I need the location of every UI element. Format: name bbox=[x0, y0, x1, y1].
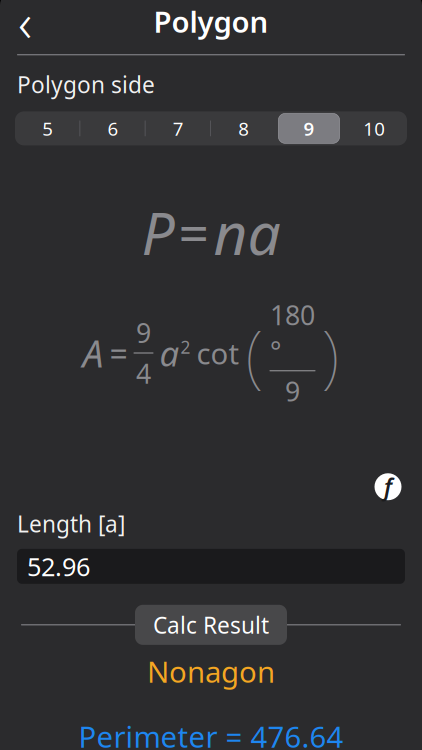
staticText: Polygon side bbox=[17, 69, 155, 99]
button[interactable]: 9 bbox=[276, 111, 342, 145]
button[interactable]: 10 bbox=[342, 111, 407, 145]
button[interactable]: Formula options bbox=[368, 467, 408, 507]
staticText: Length [a] bbox=[17, 509, 125, 539]
staticText: 7 bbox=[173, 116, 184, 141]
staticText: 9 bbox=[136, 315, 151, 350]
staticText: f bbox=[384, 472, 392, 502]
staticText: 9 bbox=[303, 116, 314, 141]
staticText: 5 bbox=[42, 116, 53, 141]
staticText: 6 bbox=[107, 116, 118, 141]
staticText: ‹ bbox=[18, 0, 32, 57]
button[interactable]: 52.96 bbox=[17, 549, 405, 584]
staticText: 52.96 bbox=[27, 549, 90, 583]
staticText: Nonagon bbox=[147, 652, 275, 691]
staticText: ( bbox=[245, 307, 263, 399]
staticText: P bbox=[141, 193, 174, 271]
staticText: 180° bbox=[270, 297, 315, 368]
staticText: ) bbox=[321, 307, 339, 399]
staticText: = bbox=[178, 197, 209, 268]
staticText: A bbox=[82, 328, 103, 378]
button[interactable]: 7 bbox=[146, 111, 211, 145]
staticText: 10 bbox=[363, 116, 385, 141]
staticText: Perimeter = 476.64 bbox=[78, 717, 343, 750]
staticText: na bbox=[213, 193, 280, 271]
button[interactable]: 5 bbox=[15, 111, 80, 145]
button[interactable]: 8 bbox=[211, 111, 276, 145]
button[interactable]: Back bbox=[0, 0, 50, 43]
staticText: 8 bbox=[238, 116, 249, 141]
staticText: = bbox=[109, 332, 127, 374]
button[interactable]: 6 bbox=[80, 111, 146, 145]
staticText: 9 bbox=[285, 373, 300, 409]
staticText: Calc Result bbox=[153, 610, 269, 640]
staticText: Polygon bbox=[153, 2, 268, 41]
staticText: a bbox=[159, 330, 179, 376]
staticText: 2 bbox=[180, 335, 190, 358]
staticText: 4 bbox=[136, 356, 151, 391]
staticText: cot bbox=[196, 333, 239, 372]
